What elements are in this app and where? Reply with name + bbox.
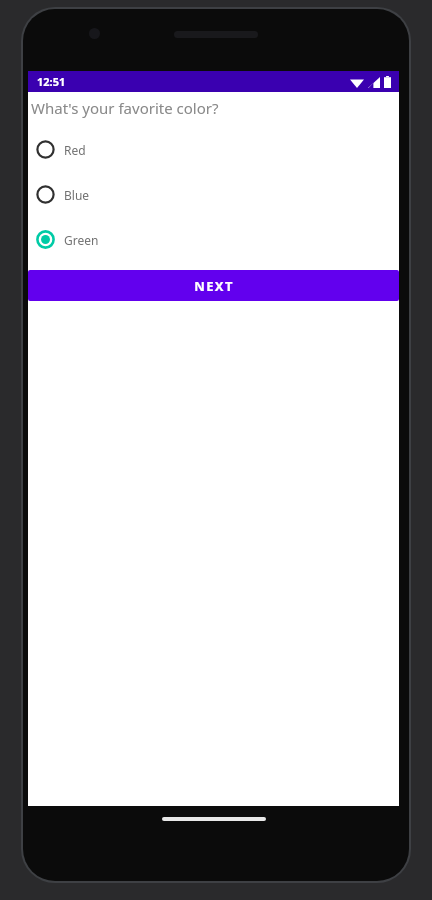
staticText: Green: [64, 232, 99, 248]
staticText: NEXT: [194, 277, 234, 295]
staticText: 12:51: [37, 74, 66, 89]
button[interactable]: Blue: [28, 172, 399, 217]
staticText: What's your favorite color?: [31, 98, 219, 118]
staticText: Blue: [64, 187, 90, 203]
staticText: Red: [64, 142, 86, 158]
button[interactable]: Red: [28, 127, 399, 172]
button[interactable]: Green: [28, 217, 399, 262]
button[interactable]: NEXT: [28, 270, 399, 301]
